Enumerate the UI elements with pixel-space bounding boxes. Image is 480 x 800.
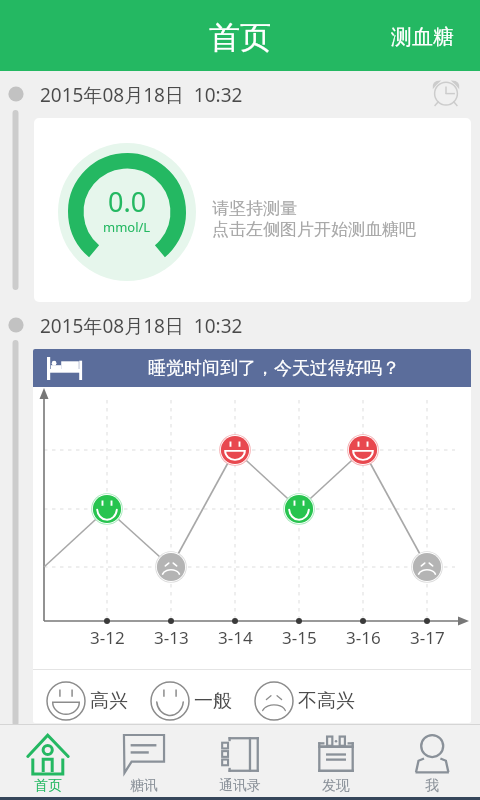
button[interactable]: 不高兴	[254, 681, 355, 721]
button[interactable]: 测血糖	[371, 10, 480, 62]
button[interactable]: 首页	[0, 725, 96, 797]
staticText: 不高兴	[298, 689, 355, 713]
staticText: 一般	[194, 689, 232, 713]
staticText: 睡觉时间到了，今天过得好吗？	[148, 357, 400, 380]
staticText: 3-16	[346, 626, 381, 649]
button[interactable]: 睡觉时间到了，今天过得好吗？	[33, 349, 471, 723]
button[interactable]: Alarm	[430, 77, 462, 109]
button[interactable]: 高兴	[46, 681, 128, 721]
staticText: 2015年08月18日 10:32	[40, 313, 243, 339]
staticText: 2015年08月18日 10:32	[40, 82, 243, 108]
button[interactable]: 糖讯	[96, 725, 192, 797]
staticText: 首页	[34, 777, 62, 795]
button[interactable]: 发现	[288, 725, 384, 797]
staticText: 通讯录	[219, 777, 261, 795]
staticText: 3-14	[218, 626, 253, 649]
button[interactable]: 我	[384, 725, 480, 797]
button[interactable]: 一般	[150, 681, 232, 721]
staticText: 高兴	[90, 689, 128, 713]
staticText: 点击左侧图片开始测血糖吧	[212, 219, 416, 240]
staticText: mmol/L	[103, 218, 151, 236]
staticText: 糖讯	[130, 777, 158, 795]
staticText: 请坚持测量	[212, 198, 297, 219]
staticText: 0.0	[108, 183, 147, 220]
staticText: 我	[425, 777, 439, 795]
staticText: 首页	[209, 18, 271, 57]
staticText: 3-12	[90, 626, 125, 649]
staticText: 3-17	[410, 626, 445, 649]
staticText: 3-13	[154, 626, 189, 649]
button[interactable]: 通讯录	[192, 725, 288, 797]
button[interactable]: 0.0	[34, 118, 471, 302]
staticText: 3-15	[282, 626, 317, 649]
staticText: 发现	[322, 777, 350, 795]
staticText: 测血糖	[391, 24, 454, 50]
